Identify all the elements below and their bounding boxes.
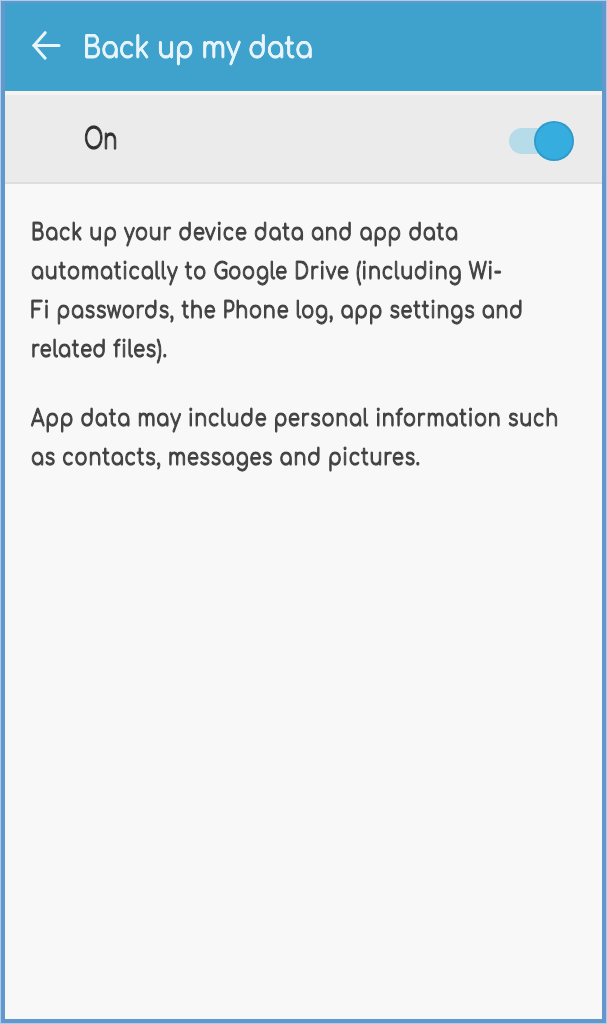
staticText: On — [84, 124, 117, 156]
staticText: Back up my data — [83, 32, 313, 65]
staticText: Back up your device data and app data au… — [31, 219, 524, 362]
staticText: Back up your device data and app data au… — [31, 219, 524, 362]
button[interactable]: On — [5, 95, 602, 182]
staticText: App data may include personal informatio… — [31, 405, 560, 470]
staticText: Back up my data — [83, 32, 313, 65]
button[interactable]: Back — [24, 24, 68, 68]
staticText: App data may include personal informatio… — [31, 405, 560, 470]
staticText: On — [84, 124, 117, 156]
